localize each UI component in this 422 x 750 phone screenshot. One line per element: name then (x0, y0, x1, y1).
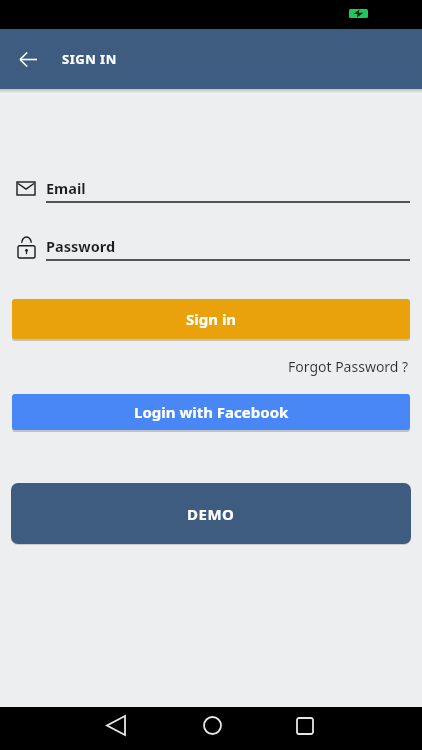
staticText: DEMO (187, 504, 235, 524)
staticText: Email (46, 178, 86, 198)
button[interactable] (0, 29, 56, 89)
button[interactable] (184, 707, 240, 744)
button[interactable]: DEMO (11, 483, 411, 544)
button[interactable]: Sign in (12, 299, 410, 339)
staticText: Sign in (186, 309, 237, 329)
button[interactable] (88, 707, 144, 744)
staticText: Login with Facebook (134, 402, 289, 422)
button[interactable]: Login with Facebook (12, 394, 410, 430)
button[interactable]: Forgot Password ? (288, 357, 409, 376)
staticText: SIGN IN (62, 50, 117, 68)
button[interactable] (277, 707, 333, 744)
button[interactable]: Email (46, 174, 410, 201)
button[interactable]: Password (46, 232, 410, 259)
staticText: Password (46, 236, 116, 256)
